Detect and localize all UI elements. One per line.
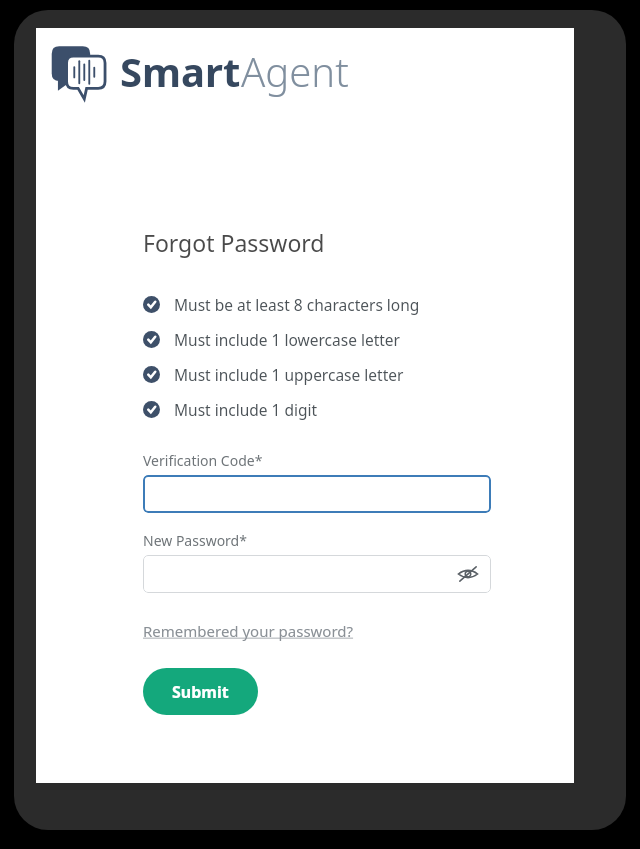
button[interactable]: Show password bbox=[143, 555, 491, 593]
staticText: Must include 1 lowercase letter bbox=[174, 329, 400, 350]
staticText: Must include 1 digit bbox=[174, 399, 318, 420]
staticText: Agent bbox=[241, 44, 349, 98]
button[interactable]: Remembered your password? bbox=[143, 621, 354, 641]
staticText: Smart bbox=[120, 44, 241, 98]
staticText: New Password* bbox=[143, 531, 247, 550]
button[interactable]: Show password bbox=[455, 561, 481, 587]
staticText: Submit bbox=[172, 681, 229, 703]
staticText: Verification Code* bbox=[143, 451, 263, 470]
staticText: Forgot Password bbox=[143, 227, 325, 258]
staticText: Must include 1 uppercase letter bbox=[174, 364, 404, 385]
staticText: Remembered your password? bbox=[143, 621, 354, 641]
button[interactable]: Submit bbox=[143, 668, 258, 715]
button[interactable] bbox=[143, 475, 491, 513]
staticText: Must be at least 8 characters long bbox=[174, 294, 420, 315]
